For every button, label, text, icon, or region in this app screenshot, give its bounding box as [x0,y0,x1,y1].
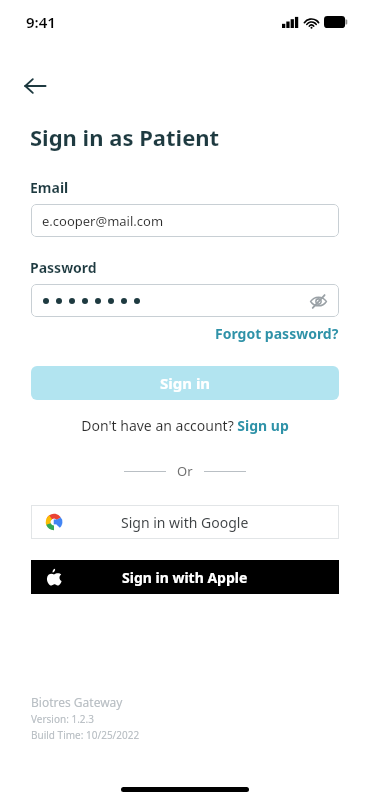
staticText: Don't have an account? Sign up [81,416,289,435]
button[interactable]: Sign in [31,366,339,400]
staticText: e.cooper@mail.com [42,212,164,230]
button[interactable]: e.cooper@mail.com [31,204,339,237]
staticText: Biotres Gateway [31,694,123,710]
staticText: 9:41 [26,12,56,32]
staticText: Build Time: 10/25/2022 [31,728,140,742]
staticText: Sign in with Apple [122,568,248,587]
button[interactable]: Sign in with Apple [31,560,339,594]
staticText: Email [30,178,69,197]
staticText: Sign in with Google [121,513,249,532]
button[interactable]: Show password [305,288,331,314]
staticText: Version: 1.2.3 [31,712,94,726]
button[interactable]: Back [24,66,64,106]
button[interactable]: Don't have an account? Sign up [0,416,370,435]
button[interactable]: Forgot password? [215,324,339,343]
staticText: Sign in as Patient [30,122,220,152]
staticText: Sign in [160,373,211,393]
staticText: Or [177,462,193,480]
button[interactable]: Sign in with Google [31,505,339,539]
button[interactable]: Show password [31,284,339,317]
staticText: Password [30,258,97,277]
